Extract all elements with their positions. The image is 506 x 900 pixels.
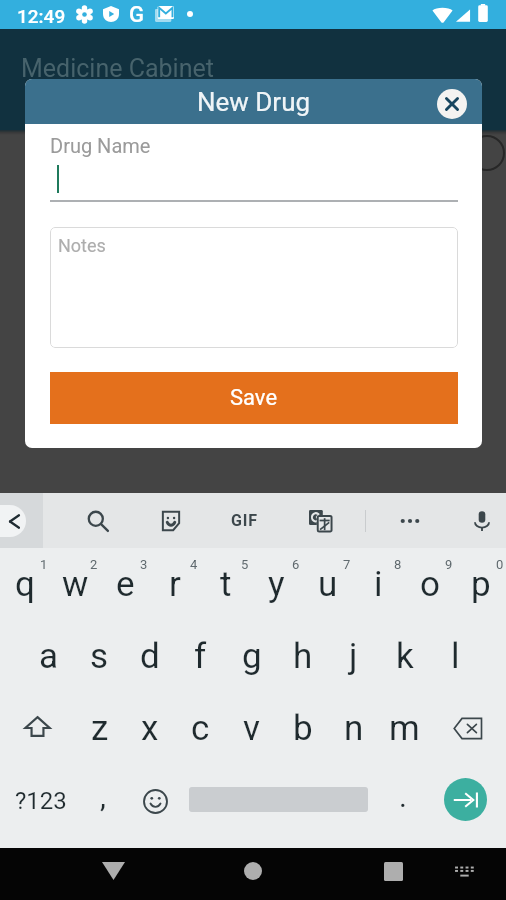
staticText: b xyxy=(293,708,313,749)
button[interactable]: i xyxy=(353,547,404,617)
staticText: Drug Name xyxy=(50,134,151,157)
button[interactable]: . xyxy=(380,758,425,844)
staticText: j xyxy=(349,636,358,677)
button[interactable]: j xyxy=(328,620,379,692)
staticText: New Drug xyxy=(25,87,482,117)
staticText: 7 xyxy=(343,557,351,572)
button[interactable]: More options xyxy=(390,503,430,538)
button[interactable]: Notes xyxy=(50,227,458,348)
button[interactable]: Search xyxy=(78,503,118,538)
staticText: r xyxy=(169,564,181,605)
staticText: x xyxy=(141,708,159,749)
button[interactable]: GIF xyxy=(224,503,264,538)
button[interactable]: l xyxy=(430,620,481,692)
button[interactable]: s xyxy=(74,620,124,692)
button[interactable]: Recent apps xyxy=(373,851,413,891)
button[interactable]: t xyxy=(200,547,251,617)
staticText: Medicine Cabinet xyxy=(21,54,214,83)
staticText: o xyxy=(420,564,440,605)
staticText: 2 xyxy=(90,557,98,572)
staticText: c xyxy=(191,708,210,749)
staticText: v xyxy=(243,708,260,749)
staticText: s xyxy=(90,636,109,677)
staticText: m xyxy=(389,708,420,749)
button[interactable]: Expand toolbar xyxy=(0,493,43,548)
staticText: 9 xyxy=(445,557,453,572)
button[interactable]: Enter xyxy=(434,758,499,844)
button[interactable]: x xyxy=(125,692,175,764)
button[interactable]: v xyxy=(226,692,277,764)
staticText: h xyxy=(293,636,313,677)
staticText: n xyxy=(344,708,364,749)
staticText: Notes xyxy=(58,235,106,256)
button[interactable]: r xyxy=(150,547,200,617)
staticText: p xyxy=(471,564,491,605)
button[interactable]: a xyxy=(24,620,74,692)
button[interactable]: Stickers xyxy=(151,503,191,538)
staticText: , xyxy=(100,779,106,814)
button[interactable]: , xyxy=(80,758,125,844)
staticText: 4 xyxy=(190,557,198,572)
button[interactable]: o xyxy=(404,547,455,617)
staticText: 5 xyxy=(241,557,249,572)
button[interactable]: Translate xyxy=(300,503,340,538)
staticText: 0 xyxy=(496,557,504,572)
staticText: e xyxy=(116,564,135,605)
staticText: w xyxy=(62,564,89,605)
button[interactable]: b xyxy=(277,692,328,764)
button[interactable]: Emoji xyxy=(132,758,178,844)
staticText: f xyxy=(194,636,207,677)
button[interactable]: d xyxy=(124,620,175,692)
staticText: y xyxy=(268,564,285,605)
staticText: G xyxy=(129,2,144,28)
staticText: GIF xyxy=(231,511,258,530)
staticText: a xyxy=(39,636,59,677)
staticText: 3 xyxy=(140,557,148,572)
staticText: u xyxy=(318,564,338,605)
button[interactable]: f xyxy=(175,620,226,692)
button[interactable]: Voice input xyxy=(462,503,502,538)
button[interactable]: h xyxy=(277,620,328,692)
staticText: 1 xyxy=(40,557,48,572)
button[interactable]: u xyxy=(302,547,353,617)
staticText: d xyxy=(140,636,160,677)
staticText: g xyxy=(242,636,262,677)
button[interactable]: m xyxy=(379,692,430,764)
button[interactable]: Home xyxy=(233,851,273,891)
staticText: 12:49 xyxy=(17,5,66,27)
staticText: 8 xyxy=(394,557,402,572)
button[interactable]: Back xyxy=(93,851,133,891)
staticText: i xyxy=(374,564,383,605)
staticText: ?123 xyxy=(15,787,67,815)
staticText: . xyxy=(399,779,407,814)
staticText: l xyxy=(451,636,460,677)
button[interactable]: p xyxy=(455,547,506,617)
button[interactable]: k xyxy=(379,620,430,692)
staticText: q xyxy=(15,564,35,605)
button[interactable]: w xyxy=(50,547,100,617)
button[interactable]: g xyxy=(226,620,277,692)
button[interactable]: y xyxy=(251,547,302,617)
button[interactable]: ?123 xyxy=(8,758,74,844)
staticText: Save xyxy=(230,385,278,411)
button[interactable]: Backspace xyxy=(430,692,506,764)
button[interactable]: Switch keyboard xyxy=(444,851,484,891)
button[interactable]: Close dialog xyxy=(436,88,468,120)
staticText: 6 xyxy=(292,557,300,572)
button[interactable]: c xyxy=(175,692,226,764)
button[interactable]: q xyxy=(0,547,50,617)
staticText: t xyxy=(220,564,232,605)
button[interactable]: z xyxy=(75,692,125,764)
button[interactable]: n xyxy=(328,692,379,764)
staticText: k xyxy=(396,636,414,677)
button[interactable]: Shift xyxy=(0,692,75,764)
button[interactable]: Space xyxy=(184,758,372,844)
staticText: z xyxy=(91,708,109,749)
button[interactable]: Save xyxy=(50,372,458,424)
button[interactable]: e xyxy=(100,547,150,617)
